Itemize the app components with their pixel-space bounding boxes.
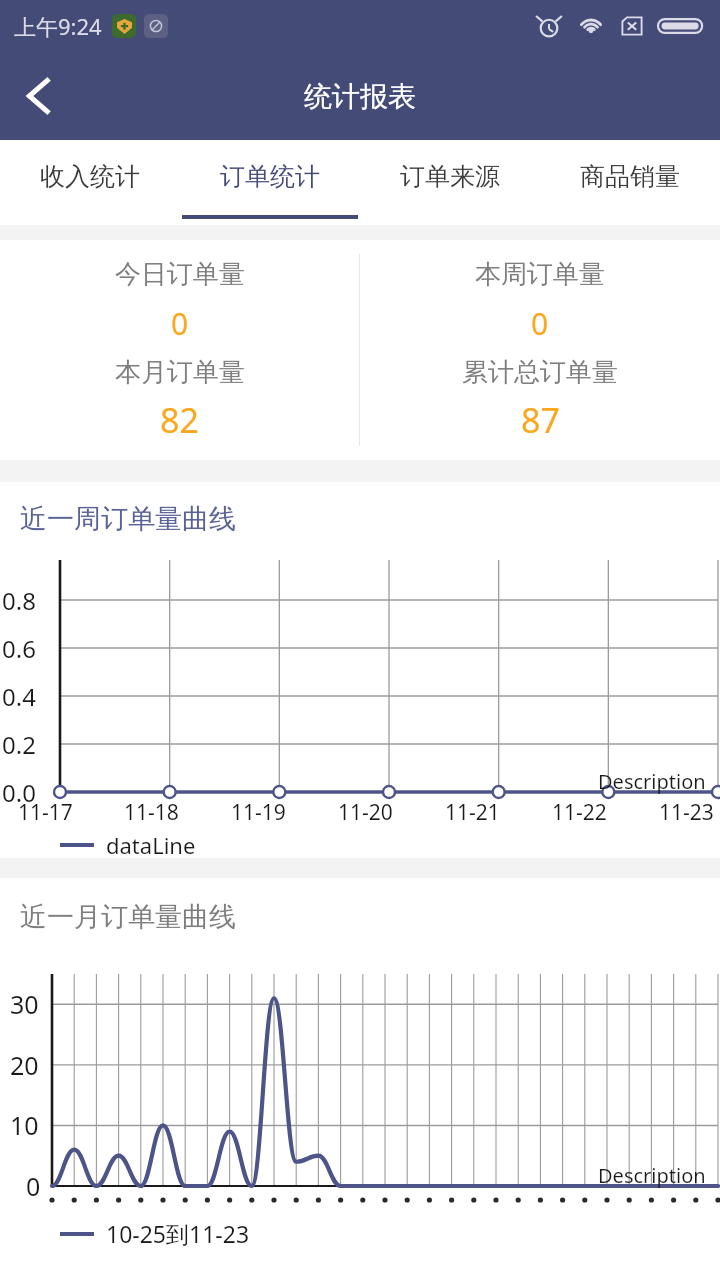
- button[interactable]: 商品销量: [540, 140, 720, 225]
- staticText: 本月订单量: [115, 356, 245, 389]
- staticText: 0.4: [2, 680, 36, 713]
- staticText: 30: [10, 987, 39, 1021]
- staticText: 11-20: [338, 798, 445, 827]
- staticText: 0.8: [2, 584, 36, 617]
- staticText: 本周订单量: [475, 258, 605, 291]
- staticText: dataLine: [106, 830, 196, 860]
- staticText: 订单来源: [400, 161, 500, 192]
- staticText: 累计总订单量: [462, 356, 618, 389]
- staticText: Description: [598, 768, 706, 795]
- staticText: 87: [521, 397, 560, 443]
- staticText: 0.6: [2, 632, 36, 665]
- staticText: 上午9:24: [14, 11, 102, 41]
- staticText: 82: [160, 397, 199, 443]
- staticText: 商品销量: [580, 161, 680, 192]
- staticText: 11-22: [552, 798, 659, 827]
- staticText: 11-17: [18, 798, 124, 827]
- staticText: 11-19: [231, 798, 338, 827]
- staticText: 0: [171, 303, 189, 344]
- staticText: 10: [10, 1108, 39, 1142]
- staticText: 20: [10, 1048, 39, 1082]
- button[interactable]: 订单统计: [180, 140, 360, 225]
- button[interactable]: 收入统计: [0, 140, 180, 225]
- staticText: 0.0: [2, 776, 36, 809]
- staticText: Description: [598, 1162, 706, 1189]
- staticText: 10-25到11-23: [106, 1218, 250, 1249]
- staticText: 11-18: [124, 798, 231, 827]
- staticText: 订单统计: [220, 161, 320, 192]
- staticText: 11-21: [445, 798, 552, 827]
- staticText: 今日订单量: [115, 258, 245, 291]
- button[interactable]: Back: [4, 60, 76, 132]
- staticText: 0: [531, 303, 549, 344]
- staticText: 11-23: [659, 798, 718, 827]
- staticText: 近一月订单量曲线: [20, 900, 236, 934]
- staticText: 0.2: [2, 728, 36, 761]
- staticText: 0: [26, 1169, 41, 1203]
- button[interactable]: 订单来源: [360, 140, 540, 225]
- staticText: 收入统计: [40, 161, 140, 192]
- staticText: 近一周订单量曲线: [20, 502, 236, 536]
- staticText: 统计报表: [304, 79, 416, 114]
